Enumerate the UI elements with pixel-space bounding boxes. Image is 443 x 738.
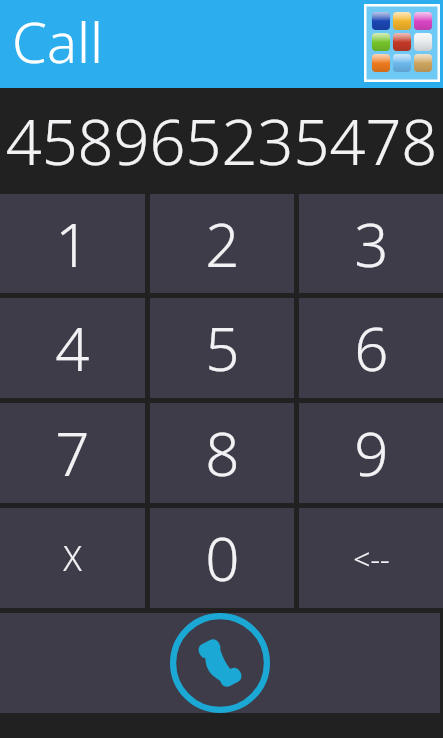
staticText: 6 xyxy=(354,307,389,389)
button[interactable]: 8 xyxy=(150,403,294,503)
button[interactable]: 1 xyxy=(0,194,145,293)
staticText: <-- xyxy=(353,538,390,579)
staticText: 3 xyxy=(354,203,389,285)
staticText: X xyxy=(63,535,82,581)
staticText: 7 xyxy=(55,412,90,494)
staticText: 458965235478 xyxy=(0,98,443,184)
staticText: 2 xyxy=(205,203,240,285)
button[interactable]: 2 xyxy=(150,194,294,293)
button[interactable]: X xyxy=(0,508,145,608)
button[interactable]: Apps xyxy=(364,4,440,82)
staticText: 4 xyxy=(55,307,90,389)
staticText: 9 xyxy=(354,412,389,494)
button[interactable]: 5 xyxy=(150,298,294,398)
staticText: 8 xyxy=(205,412,240,494)
staticText: 5 xyxy=(205,307,240,389)
staticText: Call xyxy=(12,3,103,79)
button[interactable]: 9 xyxy=(299,403,443,503)
button[interactable]: <-- xyxy=(299,508,443,608)
staticText: 1 xyxy=(55,203,90,285)
button[interactable]: 458965235478 xyxy=(0,88,443,194)
button[interactable]: Call xyxy=(0,613,440,713)
staticText: 0 xyxy=(205,517,240,599)
button[interactable]: 0 xyxy=(150,508,294,608)
button[interactable]: 3 xyxy=(299,194,443,293)
button[interactable]: 7 xyxy=(0,403,145,503)
button[interactable]: 6 xyxy=(299,298,443,398)
button[interactable]: 4 xyxy=(0,298,145,398)
